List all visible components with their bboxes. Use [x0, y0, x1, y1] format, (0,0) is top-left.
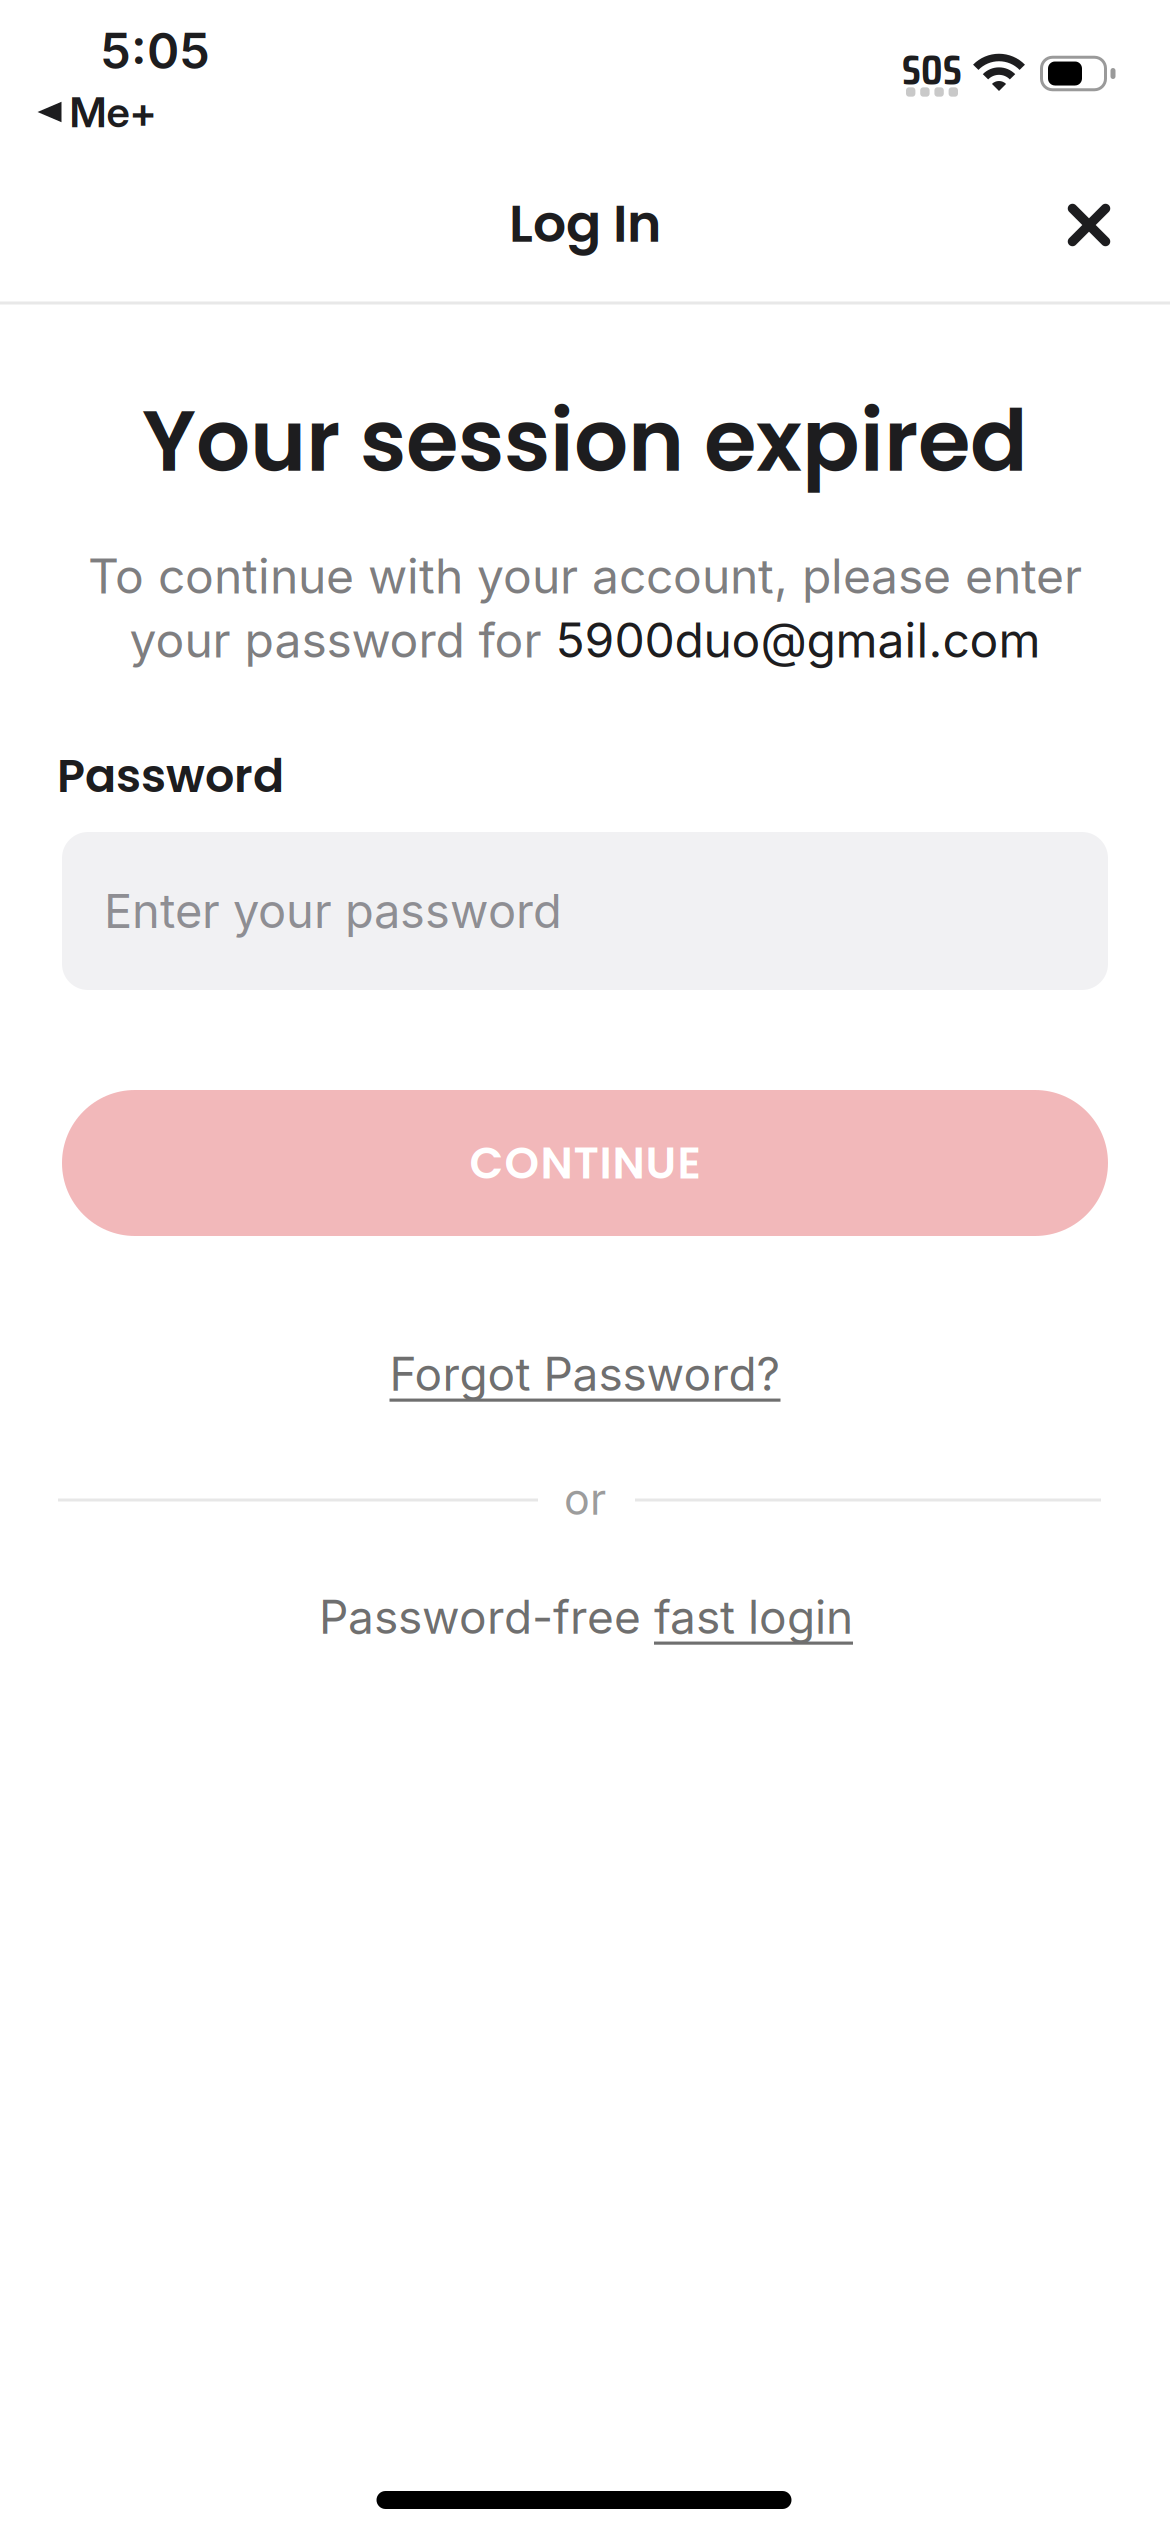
- button[interactable]: CONTINUE: [62, 1090, 1108, 1236]
- staticText: Your session expired: [142, 381, 1028, 500]
- staticText: Me+: [69, 87, 156, 137]
- staticText: SOS: [902, 37, 962, 103]
- staticText: 5900duo@gmail.com: [555, 611, 1040, 669]
- button[interactable]: Password-free fast login: [319, 1589, 853, 1645]
- staticText: Forgot Password?: [389, 1346, 780, 1402]
- staticText: or: [564, 1473, 606, 1525]
- staticText: To continue with your account, please en…: [88, 547, 1082, 605]
- staticText: Password: [57, 744, 284, 808]
- staticText: Password-free fast login: [319, 1589, 853, 1645]
- staticText: your password for: [129, 611, 555, 669]
- button[interactable]: Enter your password: [62, 832, 1108, 990]
- button[interactable]: Close: [1072, 208, 1105, 241]
- staticText: CONTINUE: [469, 1132, 700, 1194]
- staticText: Log In: [509, 187, 661, 260]
- staticText: 5:05: [100, 21, 210, 81]
- button[interactable]: Forgot Password?: [389, 1346, 780, 1402]
- staticText: Enter your password: [104, 883, 562, 939]
- button[interactable]: Back to Me+: [37, 87, 156, 137]
